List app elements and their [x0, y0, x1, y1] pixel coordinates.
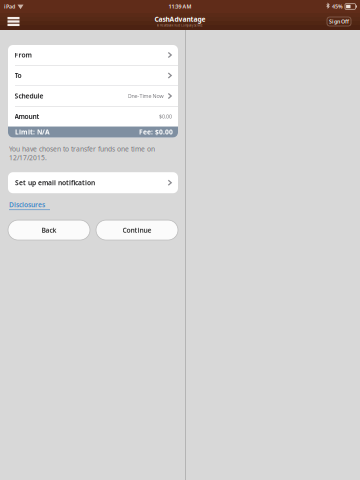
- staticText: Amount: [14, 112, 39, 121]
- button[interactable]: Continue: [96, 220, 178, 240]
- button[interactable]: Schedule: [8, 86, 178, 106]
- staticText: Disclosures: [9, 200, 45, 209]
- staticText: 11:39 AM: [168, 3, 191, 10]
- staticText: Back: [41, 226, 56, 234]
- staticText: Schedule: [14, 92, 43, 100]
- staticText: To: [14, 71, 21, 80]
- staticText: CashAdvantage: [154, 15, 205, 24]
- staticText: You have chosen to transfer funds one ti…: [9, 144, 155, 162]
- staticText: iPad: [4, 3, 15, 10]
- button[interactable]: Sign Off: [327, 17, 351, 26]
- button[interactable]: To: [8, 65, 178, 85]
- staticText: Limit: N/A: [15, 128, 50, 136]
- button[interactable]: Amount: [8, 106, 178, 126]
- staticText: Sign Off: [329, 18, 349, 25]
- staticText: $0.00: [159, 113, 172, 120]
- staticText: Continue: [122, 226, 151, 234]
- staticText: Set up email notification: [15, 178, 95, 187]
- staticText: 45%: [332, 3, 343, 10]
- button[interactable]: Back: [8, 220, 90, 240]
- button[interactable]: Disclosures: [8, 200, 50, 210]
- button[interactable]: From: [8, 45, 178, 65]
- button[interactable]: Set up email notification: [8, 172, 178, 193]
- staticText: One-Time Now: [127, 92, 163, 100]
- staticText: From: [14, 51, 31, 59]
- staticText: A HeartBank Trust Company Service: [157, 24, 203, 27]
- staticText: Fee: $0.00: [139, 128, 173, 136]
- button[interactable]: Menu: [0, 13, 22, 30]
